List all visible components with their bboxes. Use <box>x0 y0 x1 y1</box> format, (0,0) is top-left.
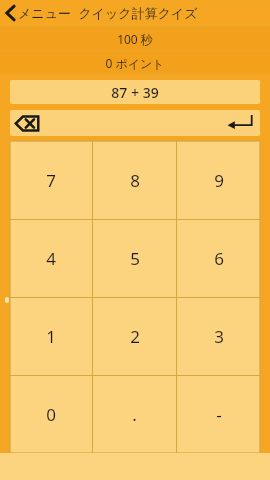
button[interactable]: 5 <box>93 220 176 297</box>
staticText: 4 <box>46 247 56 270</box>
button[interactable]: 0 <box>10 376 92 453</box>
staticText: メニュー <box>18 5 71 21</box>
button[interactable]: Enter <box>220 110 260 136</box>
button[interactable]: 4 <box>10 220 92 297</box>
button[interactable]: 7 <box>10 141 92 219</box>
button[interactable]: Backspace <box>10 110 44 136</box>
staticText: 2 <box>130 325 140 348</box>
staticText: 0 <box>46 403 56 426</box>
staticText: - <box>216 403 222 426</box>
button[interactable]: 9 <box>177 141 260 219</box>
staticText: クイック計算クイズ <box>78 5 198 21</box>
button[interactable]: 8 <box>93 141 176 219</box>
button[interactable]: 3 <box>177 298 260 375</box>
button[interactable]: 1 <box>10 298 92 375</box>
button[interactable]: 2 <box>93 298 176 375</box>
button[interactable]: Back <box>4 4 71 22</box>
staticText: 87 + 39 <box>111 83 159 102</box>
button[interactable]: - <box>177 376 260 453</box>
other: Back <box>4 4 17 22</box>
staticText: . <box>132 403 137 426</box>
staticText: 8 <box>130 169 140 192</box>
button[interactable]: . <box>93 376 176 453</box>
staticText: 3 <box>214 325 224 348</box>
staticText: 7 <box>46 169 56 192</box>
staticText: 1 <box>46 325 56 348</box>
staticText: 100 秒 <box>117 31 153 47</box>
staticText: 5 <box>130 247 140 270</box>
staticText: 9 <box>214 169 224 192</box>
button[interactable]: 6 <box>177 220 260 297</box>
staticText: 0 ポイント <box>105 55 165 71</box>
staticText: 6 <box>214 247 224 270</box>
